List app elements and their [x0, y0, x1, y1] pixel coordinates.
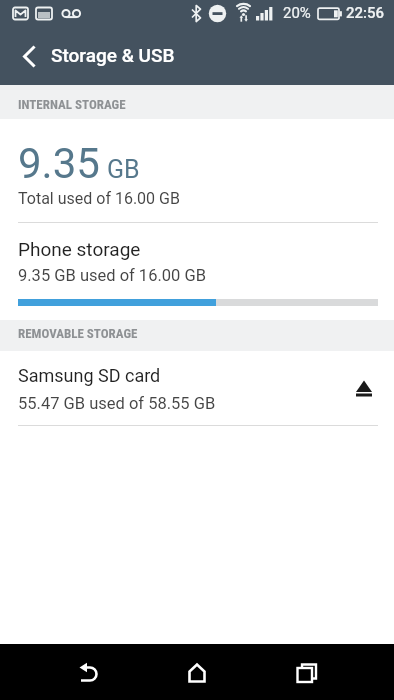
- staticText: Phone storage: [18, 238, 141, 260]
- staticText: GB: [107, 155, 140, 184]
- staticText: 20%: [283, 4, 311, 22]
- staticText: Samsung SD card: [18, 365, 161, 386]
- staticText: 9.35: [18, 139, 100, 188]
- staticText: Total used of 16.00 GB: [18, 189, 180, 208]
- staticText: Storage & USB: [51, 44, 175, 66]
- staticText: 55.47 GB used of 58.55 GB: [18, 394, 216, 413]
- staticText: 9.35 GB used of 16.00 GB: [18, 266, 206, 285]
- staticText: REMOVABLE STORAGE: [18, 326, 138, 341]
- staticText: 22:56: [346, 4, 385, 22]
- staticText: INTERNAL STORAGE: [18, 97, 126, 112]
